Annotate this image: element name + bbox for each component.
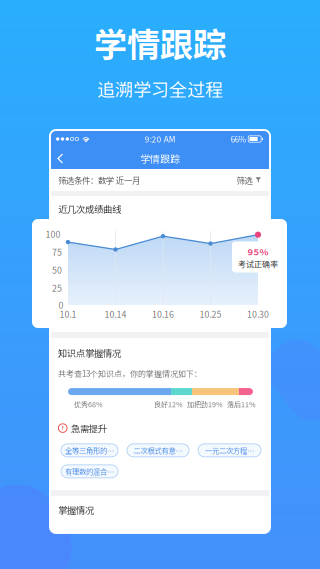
staticText: 良好12% (154, 399, 183, 409)
staticText: 共考查13个知识点，你的掌握情况如下： (58, 367, 202, 379)
staticText: 学情跟踪 (94, 18, 226, 67)
staticText: 95% (247, 244, 268, 258)
staticText: 筛选 (236, 174, 252, 186)
staticText: 10.1 (59, 308, 76, 320)
staticText: 10.16 (152, 308, 174, 320)
button[interactable]: 筛选 (236, 169, 261, 191)
staticText: 10.30 (247, 308, 269, 320)
button[interactable]: Back (50, 149, 72, 168)
button[interactable]: 全等三角形的… (61, 444, 118, 457)
staticText: 10.25 (199, 308, 221, 320)
staticText: 知识点掌握情况 (58, 346, 121, 359)
staticText: 优秀68% (74, 399, 103, 409)
staticText: 急需提升 (71, 421, 107, 435)
staticText: 追溯学习全过程 (97, 76, 223, 102)
staticText: 一元二次方程… (205, 445, 254, 456)
staticText: 加把劲19% (187, 399, 223, 409)
staticText: 9:20 AM (145, 133, 176, 145)
staticText: 50 (52, 264, 62, 276)
staticText: 全等三角形的… (65, 445, 114, 456)
button[interactable]: 有理数的混合… (61, 465, 118, 478)
staticText: 0 (58, 299, 63, 311)
staticText: 10.14 (104, 308, 126, 320)
button[interactable]: 二次根式有意… (127, 444, 189, 457)
staticText: 有理数的混合… (65, 466, 114, 477)
staticText: 25 (52, 282, 62, 294)
staticText: 落后11% (227, 399, 256, 409)
staticText: 近几次成绩曲线 (58, 202, 121, 215)
staticText: 掌握情况 (58, 503, 94, 516)
staticText: 二次根式有意… (133, 445, 182, 456)
staticText: 100 (45, 228, 60, 240)
staticText: 学情跟踪 (140, 151, 180, 166)
staticText: 考试正确率 (238, 258, 278, 270)
staticText: 66% (231, 133, 246, 145)
staticText: 75 (52, 246, 62, 258)
staticText: 筛选条件：数学 近一月 (58, 174, 140, 186)
button[interactable]: 一元二次方程… (198, 444, 261, 457)
